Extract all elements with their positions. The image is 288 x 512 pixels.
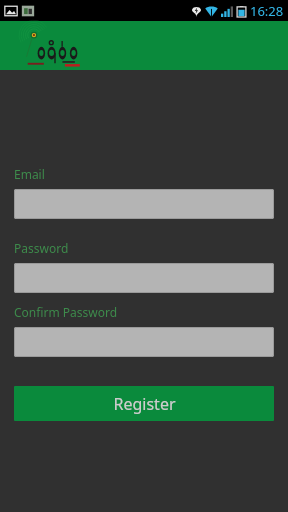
- staticText: Confirm Password: [14, 304, 118, 320]
- button[interactable]: Password input: [14, 263, 274, 293]
- button[interactable]: Confirm password input: [14, 327, 274, 357]
- staticText: 16:28: [250, 2, 284, 20]
- button[interactable]: Register: [14, 386, 274, 421]
- other: App logo: [24, 25, 86, 67]
- staticText: Password: [14, 240, 69, 256]
- staticText: Email: [14, 166, 45, 182]
- staticText: Register: [113, 393, 176, 415]
- button[interactable]: Email input: [14, 189, 274, 219]
